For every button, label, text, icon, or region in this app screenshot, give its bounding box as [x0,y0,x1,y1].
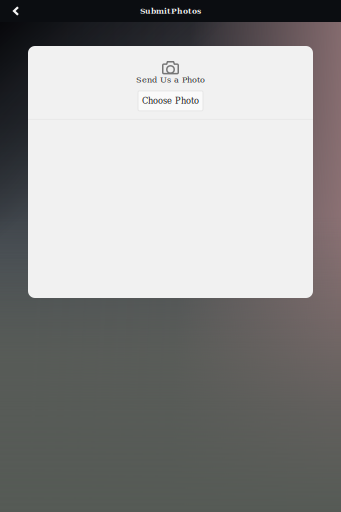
staticText: Choose Photo [142,96,199,106]
button[interactable]: Choose Photo [138,91,203,111]
staticText: Send Us a Photo [136,75,205,84]
button[interactable]: Back [0,0,32,22]
staticText: SubmitPhotos [140,6,201,15]
